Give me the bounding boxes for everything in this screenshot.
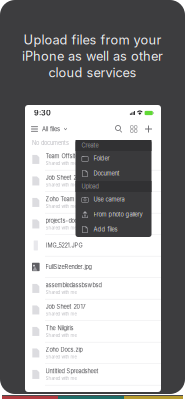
- button[interactable]: Use camera: [75, 192, 151, 207]
- staticText: Job Sheet 2017: [46, 303, 86, 310]
- button[interactable]: Team Offsite: [25, 149, 161, 170]
- staticText: Document: [93, 170, 119, 177]
- staticText: Create: [81, 142, 98, 149]
- button[interactable]: The Nilgiris: [25, 321, 161, 342]
- staticText: Shared with me: [46, 204, 77, 209]
- staticText: Job Sheet 2017: [46, 174, 86, 181]
- button[interactable]: FullSizeRender.jpg: [25, 256, 161, 278]
- button[interactable]: Job Sheet 2017: [25, 299, 161, 321]
- staticText: Zoho Docs.zip: [46, 346, 83, 353]
- button[interactable]: assembledassbswbsd: [25, 278, 161, 299]
- button[interactable]: Zoho Docs.zip: [25, 342, 161, 364]
- button[interactable]: Document: [75, 166, 151, 181]
- staticText: Folder: [93, 155, 109, 162]
- staticText: assembledassbswbsd: [46, 282, 102, 289]
- button[interactable]: Grid view: [122, 126, 137, 132]
- staticText: 9:30: [34, 109, 51, 117]
- button[interactable]: Zoho Team Outing: [25, 192, 161, 213]
- staticText: Zoho Team Outing: [46, 196, 93, 203]
- staticText: FullSizeRender.jpg: [46, 264, 92, 270]
- button[interactable]: From photo gallery: [75, 207, 151, 222]
- button[interactable]: Folder: [75, 151, 151, 166]
- staticText: Use camera: [93, 196, 124, 203]
- button[interactable]: Untitled Spreadsheet: [25, 364, 161, 385]
- staticText: Team Offsite: [46, 153, 79, 160]
- staticText: Shared with me: [46, 311, 77, 317]
- staticText: From photo gallery: [93, 211, 142, 218]
- staticText: Shared with me: [46, 333, 77, 338]
- staticText: Add files: [93, 226, 117, 233]
- button[interactable]: Job Sheet 2017: [25, 170, 161, 192]
- button[interactable]: All files: [31, 123, 67, 135]
- staticText: Shared with me: [46, 354, 77, 360]
- staticText: Upload files from your: [23, 32, 161, 47]
- staticText: Shared with me: [46, 161, 77, 166]
- button[interactable]: Add: [137, 125, 152, 132]
- button[interactable]: IMG_5221.JPG: [25, 235, 161, 256]
- staticText: Untitled Spreadsheet: [46, 368, 99, 375]
- staticText: No documents: [32, 140, 69, 146]
- staticText: Shared with me: [46, 290, 77, 295]
- staticText: The Nilgiris: [46, 325, 74, 332]
- staticText: cloud services: [48, 65, 136, 80]
- staticText: projects-doc: [46, 217, 78, 224]
- staticText: Shared with me: [46, 376, 77, 381]
- button[interactable]: projects-doc: [25, 213, 161, 235]
- button[interactable]: Search: [115, 125, 122, 132]
- button[interactable]: Add files: [75, 222, 151, 237]
- staticText: IMG_5221.JPG: [46, 242, 83, 249]
- staticText: All files: [42, 125, 60, 133]
- staticText: Shared with me: [46, 225, 77, 231]
- staticText: Shared with me: [46, 182, 77, 188]
- staticText: Upload: [81, 183, 98, 190]
- staticText: iPhone as well as other: [22, 48, 163, 64]
